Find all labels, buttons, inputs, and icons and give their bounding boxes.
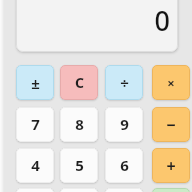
button[interactable]: plus minus	[16, 65, 54, 100]
button[interactable]: multiply	[152, 65, 190, 100]
staticText: C	[75, 73, 84, 92]
staticText: +	[166, 155, 176, 177]
button[interactable]: nine	[105, 107, 143, 142]
staticText: ±	[31, 73, 40, 93]
button[interactable]: equals	[152, 188, 190, 192]
button[interactable]: three	[105, 188, 143, 192]
button[interactable]: two	[60, 188, 98, 192]
staticText: 7	[31, 114, 40, 134]
button[interactable]: eight	[60, 107, 98, 142]
staticText: −	[166, 114, 176, 136]
staticText: 6	[120, 155, 129, 175]
button[interactable]: plus	[152, 148, 190, 183]
button[interactable]: minus	[152, 107, 190, 142]
button[interactable]: one	[16, 188, 54, 192]
staticText: 5	[75, 155, 84, 175]
button[interactable]: four	[16, 148, 54, 183]
button[interactable]: six	[105, 148, 143, 183]
staticText: ÷	[120, 73, 129, 93]
button[interactable]: clear	[60, 65, 98, 100]
staticText: ×	[167, 74, 175, 92]
button[interactable]: divide	[105, 65, 143, 100]
staticText: 0	[154, 2, 170, 39]
button[interactable]: seven	[16, 107, 54, 142]
button[interactable]: five	[60, 148, 98, 183]
staticText: 9	[120, 114, 129, 134]
staticText: 4	[31, 155, 40, 175]
staticText: 8	[75, 114, 84, 134]
